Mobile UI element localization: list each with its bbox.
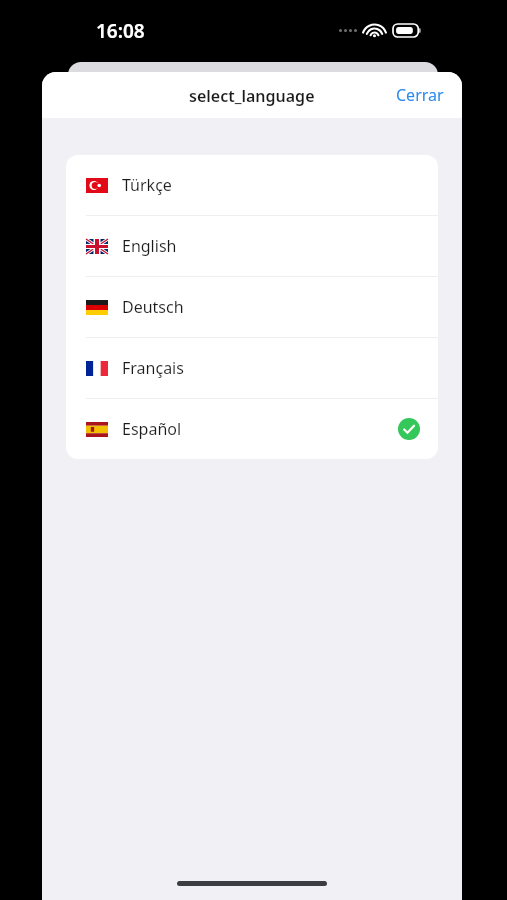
button[interactable]: Français [66, 338, 438, 398]
button[interactable]: Türkçe [66, 155, 438, 215]
button[interactable]: Español [66, 399, 438, 459]
staticText: Cerrar [396, 84, 444, 106]
staticText: English [122, 235, 177, 257]
button[interactable]: Deutsch [66, 277, 438, 337]
staticText: Türkçe [122, 174, 172, 196]
staticText: Français [122, 357, 184, 379]
other: Selected [398, 418, 420, 440]
button[interactable]: English [66, 216, 438, 276]
button[interactable]: Cerrar [378, 73, 462, 117]
staticText: Español [122, 418, 182, 440]
staticText: select_language [189, 85, 315, 107]
staticText: Deutsch [122, 296, 184, 318]
staticText: 16:08 [96, 18, 145, 44]
